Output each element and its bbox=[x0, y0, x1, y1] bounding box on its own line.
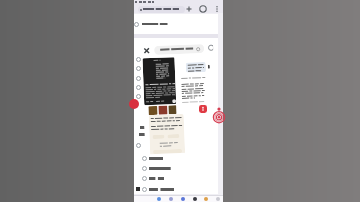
button[interactable]: App bbox=[193, 197, 197, 201]
button[interactable] bbox=[134, 14, 218, 34]
button[interactable] bbox=[142, 166, 202, 171]
button[interactable] bbox=[142, 187, 202, 192]
button[interactable]: More options bbox=[213, 5, 221, 13]
button[interactable]: Tabs bbox=[199, 5, 207, 13]
other: Tap indicator bbox=[212, 107, 226, 121]
button[interactable] bbox=[153, 149, 182, 154]
button[interactable] bbox=[142, 176, 202, 181]
button[interactable]: App bbox=[204, 197, 208, 201]
button[interactable]: Notification bbox=[199, 105, 207, 113]
button[interactable]: Close bbox=[143, 47, 150, 54]
button[interactable]: App bbox=[181, 197, 185, 201]
button[interactable] bbox=[138, 6, 185, 13]
button[interactable]: App bbox=[216, 197, 220, 201]
button[interactable] bbox=[142, 156, 202, 161]
button[interactable]: Help bbox=[208, 45, 213, 51]
button[interactable] bbox=[154, 44, 204, 55]
button[interactable]: New tab bbox=[185, 5, 193, 13]
button[interactable]: App bbox=[169, 197, 173, 201]
button[interactable]: App bbox=[157, 197, 161, 201]
